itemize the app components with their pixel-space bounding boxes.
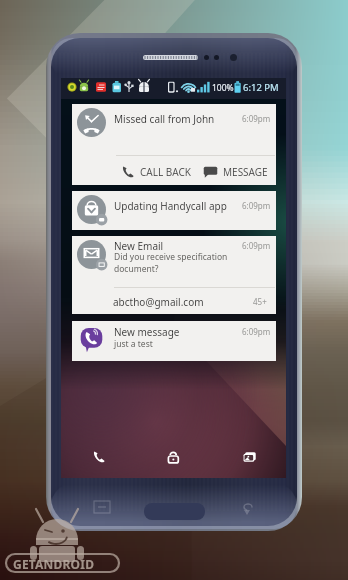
button[interactable]: Missed call from John [72, 104, 276, 185]
button[interactable]: New message [72, 321, 276, 361]
staticText: 6:12 PM [243, 81, 279, 94]
button[interactable]: Camera [211, 436, 286, 478]
staticText: 100% [212, 82, 234, 94]
staticText: just a test [114, 338, 153, 350]
staticText: Updating Handycall app [114, 199, 227, 213]
staticText: New Email [114, 239, 164, 253]
staticText: GETANDROID [13, 556, 95, 572]
staticText: 6:09pm [242, 326, 271, 337]
button[interactable]: MESSAGE [201, 164, 270, 179]
staticText: 6:09pm [242, 113, 271, 124]
staticText: Did you receive specification [114, 251, 228, 263]
other: Back [241, 501, 257, 513]
staticText: Missed call from John [114, 112, 215, 126]
staticText: 6:09pm [242, 200, 271, 211]
button[interactable]: CALL BACK [119, 165, 193, 179]
staticText: abctho@gmail.com [113, 295, 204, 309]
button[interactable]: Phone [61, 436, 136, 478]
button[interactable]: Home [144, 503, 205, 520]
button[interactable]: New Email [72, 236, 276, 314]
other: Menu [94, 501, 110, 513]
button[interactable]: Updating Handycall app [72, 191, 276, 230]
staticText: New message [114, 325, 180, 339]
staticText: 45+ [253, 296, 267, 307]
staticText: document? [114, 263, 159, 275]
staticText: MESSAGE [223, 165, 268, 179]
button[interactable]: Unlock [136, 436, 211, 478]
staticText: 6:09pm [242, 240, 271, 251]
staticText: CALL BACK [140, 165, 191, 179]
